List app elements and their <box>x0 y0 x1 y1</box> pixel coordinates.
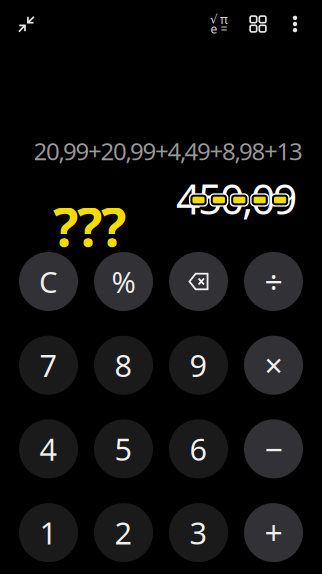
button[interactable]: − <box>244 419 303 478</box>
staticText: e <box>210 21 217 37</box>
button[interactable]: 1 <box>19 503 78 562</box>
button[interactable]: 5 <box>94 419 153 478</box>
staticText: π <box>220 11 228 27</box>
staticText: 9 <box>189 345 207 385</box>
staticText: 4 <box>39 428 57 469</box>
button[interactable]: Backspace <box>169 252 228 311</box>
button[interactable]: % <box>94 252 153 311</box>
staticText: + <box>264 511 282 554</box>
staticText: 3 <box>189 512 207 553</box>
button[interactable]: ÷ <box>244 252 303 311</box>
staticText: 8 <box>114 345 132 385</box>
staticText: 1 <box>39 512 57 553</box>
staticText: 20,99+20,99+4,49+8,98+13 <box>33 135 303 167</box>
button[interactable]: Maths symbols <box>200 4 238 44</box>
staticText: 5 <box>114 428 132 469</box>
staticText: C <box>39 262 58 301</box>
staticText: × <box>264 344 282 386</box>
button[interactable]: 3 <box>169 503 228 562</box>
staticText: 450,09 <box>176 170 297 226</box>
staticText: ??? <box>53 191 126 261</box>
staticText: 7 <box>39 345 57 385</box>
button[interactable]: × <box>244 336 303 395</box>
staticText: √ <box>210 12 218 26</box>
staticText: 2 <box>114 512 132 553</box>
staticText: % <box>111 262 135 301</box>
button[interactable]: C <box>19 252 78 311</box>
button[interactable]: 8 <box>94 336 153 395</box>
button[interactable]: 6 <box>169 419 228 478</box>
button[interactable]: 7 <box>19 336 78 395</box>
staticText: ÷ <box>264 260 282 303</box>
button[interactable]: 4 <box>19 419 78 478</box>
button[interactable]: 9 <box>169 336 228 395</box>
button[interactable]: Collapse <box>5 4 49 44</box>
button[interactable]: 2 <box>94 503 153 562</box>
button[interactable]: + <box>244 503 303 562</box>
button[interactable]: Keypad layout <box>239 4 277 44</box>
button[interactable]: More options <box>278 4 312 44</box>
staticText: 6 <box>189 428 207 469</box>
staticText: = <box>220 21 227 37</box>
staticText: − <box>264 428 282 470</box>
